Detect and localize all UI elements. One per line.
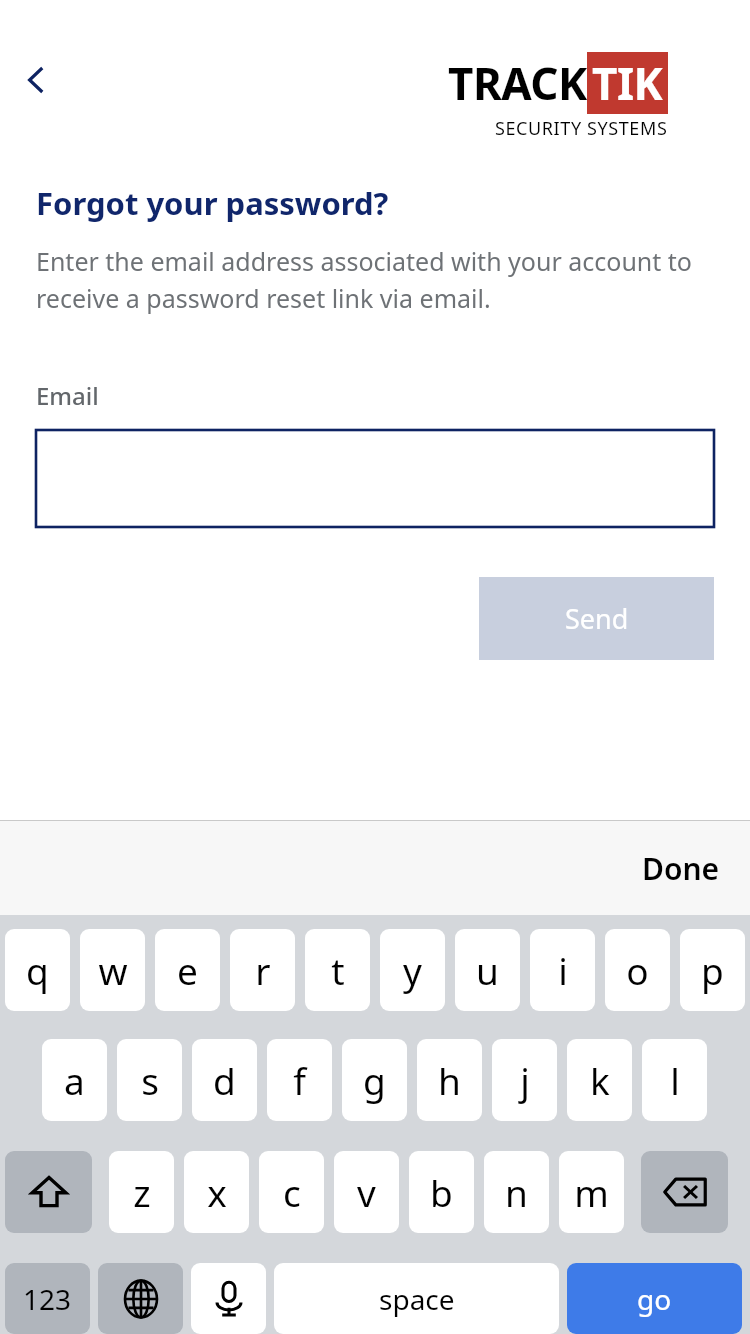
staticText: i	[558, 945, 568, 995]
button[interactable]: k	[567, 1039, 632, 1121]
button[interactable]: l	[642, 1039, 707, 1121]
button[interactable]: d	[192, 1039, 257, 1121]
button[interactable]: y	[380, 929, 445, 1011]
button[interactable]: e	[155, 929, 220, 1011]
staticText: e	[177, 945, 198, 995]
staticText: TRACK	[448, 53, 587, 113]
staticText: y	[403, 945, 422, 995]
button[interactable]: b	[409, 1151, 474, 1233]
button[interactable]: r	[230, 929, 295, 1011]
staticText: u	[476, 945, 499, 995]
staticText: r	[255, 945, 271, 995]
button[interactable]: n	[484, 1151, 549, 1233]
staticText: a	[64, 1055, 85, 1105]
staticText: c	[283, 1167, 301, 1217]
staticText: go	[637, 1280, 672, 1318]
staticText: s	[141, 1055, 159, 1105]
staticText: l	[670, 1055, 680, 1105]
button[interactable]: Shift	[5, 1151, 92, 1233]
staticText: d	[213, 1055, 236, 1105]
button[interactable]: w	[80, 929, 145, 1011]
staticText: space	[379, 1280, 455, 1318]
button[interactable]: m	[559, 1151, 624, 1233]
button[interactable]: Change language	[98, 1263, 183, 1334]
staticText: TIK	[592, 53, 663, 113]
staticText: o	[626, 945, 649, 995]
button[interactable]: o	[605, 929, 670, 1011]
button[interactable]: 123	[5, 1263, 90, 1334]
button[interactable]: q	[5, 929, 70, 1011]
button[interactable]: s	[117, 1039, 182, 1121]
staticText: h	[438, 1055, 461, 1105]
staticText: Email	[36, 379, 99, 412]
staticText: g	[363, 1055, 386, 1105]
button[interactable]: c	[259, 1151, 324, 1233]
staticText: SECURITY SYSTEMS	[495, 116, 668, 141]
staticText: w	[98, 945, 128, 995]
staticText: f	[293, 1055, 306, 1105]
staticText: k	[590, 1055, 610, 1105]
button[interactable]: h	[417, 1039, 482, 1121]
button[interactable]: p	[680, 929, 745, 1011]
button[interactable]: Done	[630, 840, 732, 897]
staticText: Done	[642, 848, 720, 889]
staticText: t	[331, 945, 345, 995]
staticText: Forgot your password?	[36, 182, 389, 224]
button[interactable]: Send	[479, 577, 714, 660]
button[interactable]: v	[334, 1151, 399, 1233]
staticText: z	[133, 1167, 151, 1217]
button[interactable]: i	[530, 929, 595, 1011]
staticText: b	[430, 1167, 453, 1217]
button[interactable]: space	[274, 1263, 559, 1334]
button[interactable]: t	[305, 929, 370, 1011]
staticText: Send	[565, 600, 629, 637]
button[interactable]: a	[42, 1039, 107, 1121]
staticText: m	[574, 1167, 609, 1217]
staticText: q	[26, 945, 49, 995]
button[interactable]: g	[342, 1039, 407, 1121]
button[interactable]: z	[109, 1151, 174, 1233]
button[interactable]: Backspace	[641, 1151, 728, 1233]
staticText: 123	[23, 1280, 72, 1318]
staticText: p	[701, 945, 724, 995]
button[interactable]	[36, 430, 714, 527]
button[interactable]: x	[184, 1151, 249, 1233]
button[interactable]: j	[492, 1039, 557, 1121]
button[interactable]: go	[567, 1263, 742, 1334]
button[interactable]: Back	[8, 52, 64, 108]
button[interactable]: u	[455, 929, 520, 1011]
staticText: j	[520, 1055, 530, 1105]
staticText: Enter the email address associated with …	[36, 244, 714, 315]
staticText: v	[357, 1167, 376, 1217]
button[interactable]: Voice input	[191, 1263, 266, 1334]
staticText: x	[207, 1167, 227, 1217]
button[interactable]: f	[267, 1039, 332, 1121]
staticText: n	[505, 1167, 528, 1217]
